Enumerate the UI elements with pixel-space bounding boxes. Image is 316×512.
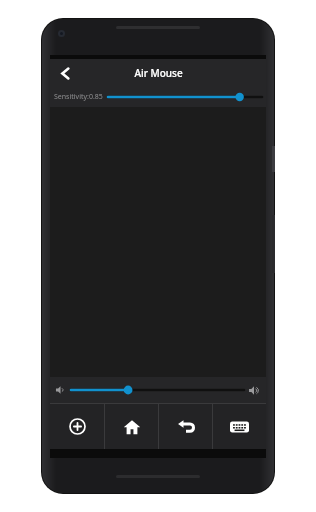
button[interactable]: Volume down (55, 384, 67, 396)
button[interactable]: Volume up (248, 384, 261, 397)
button[interactable] (108, 88, 262, 106)
button[interactable]: Add (50, 404, 104, 449)
button[interactable]: Home (105, 404, 158, 449)
button[interactable] (71, 381, 244, 399)
button[interactable]: Back (52, 60, 78, 86)
button[interactable]: Keyboard (213, 404, 266, 449)
button[interactable]: Back (159, 404, 212, 449)
staticText: Air Mouse (134, 66, 183, 80)
staticText: Sensitivity:0.85 (54, 92, 103, 102)
